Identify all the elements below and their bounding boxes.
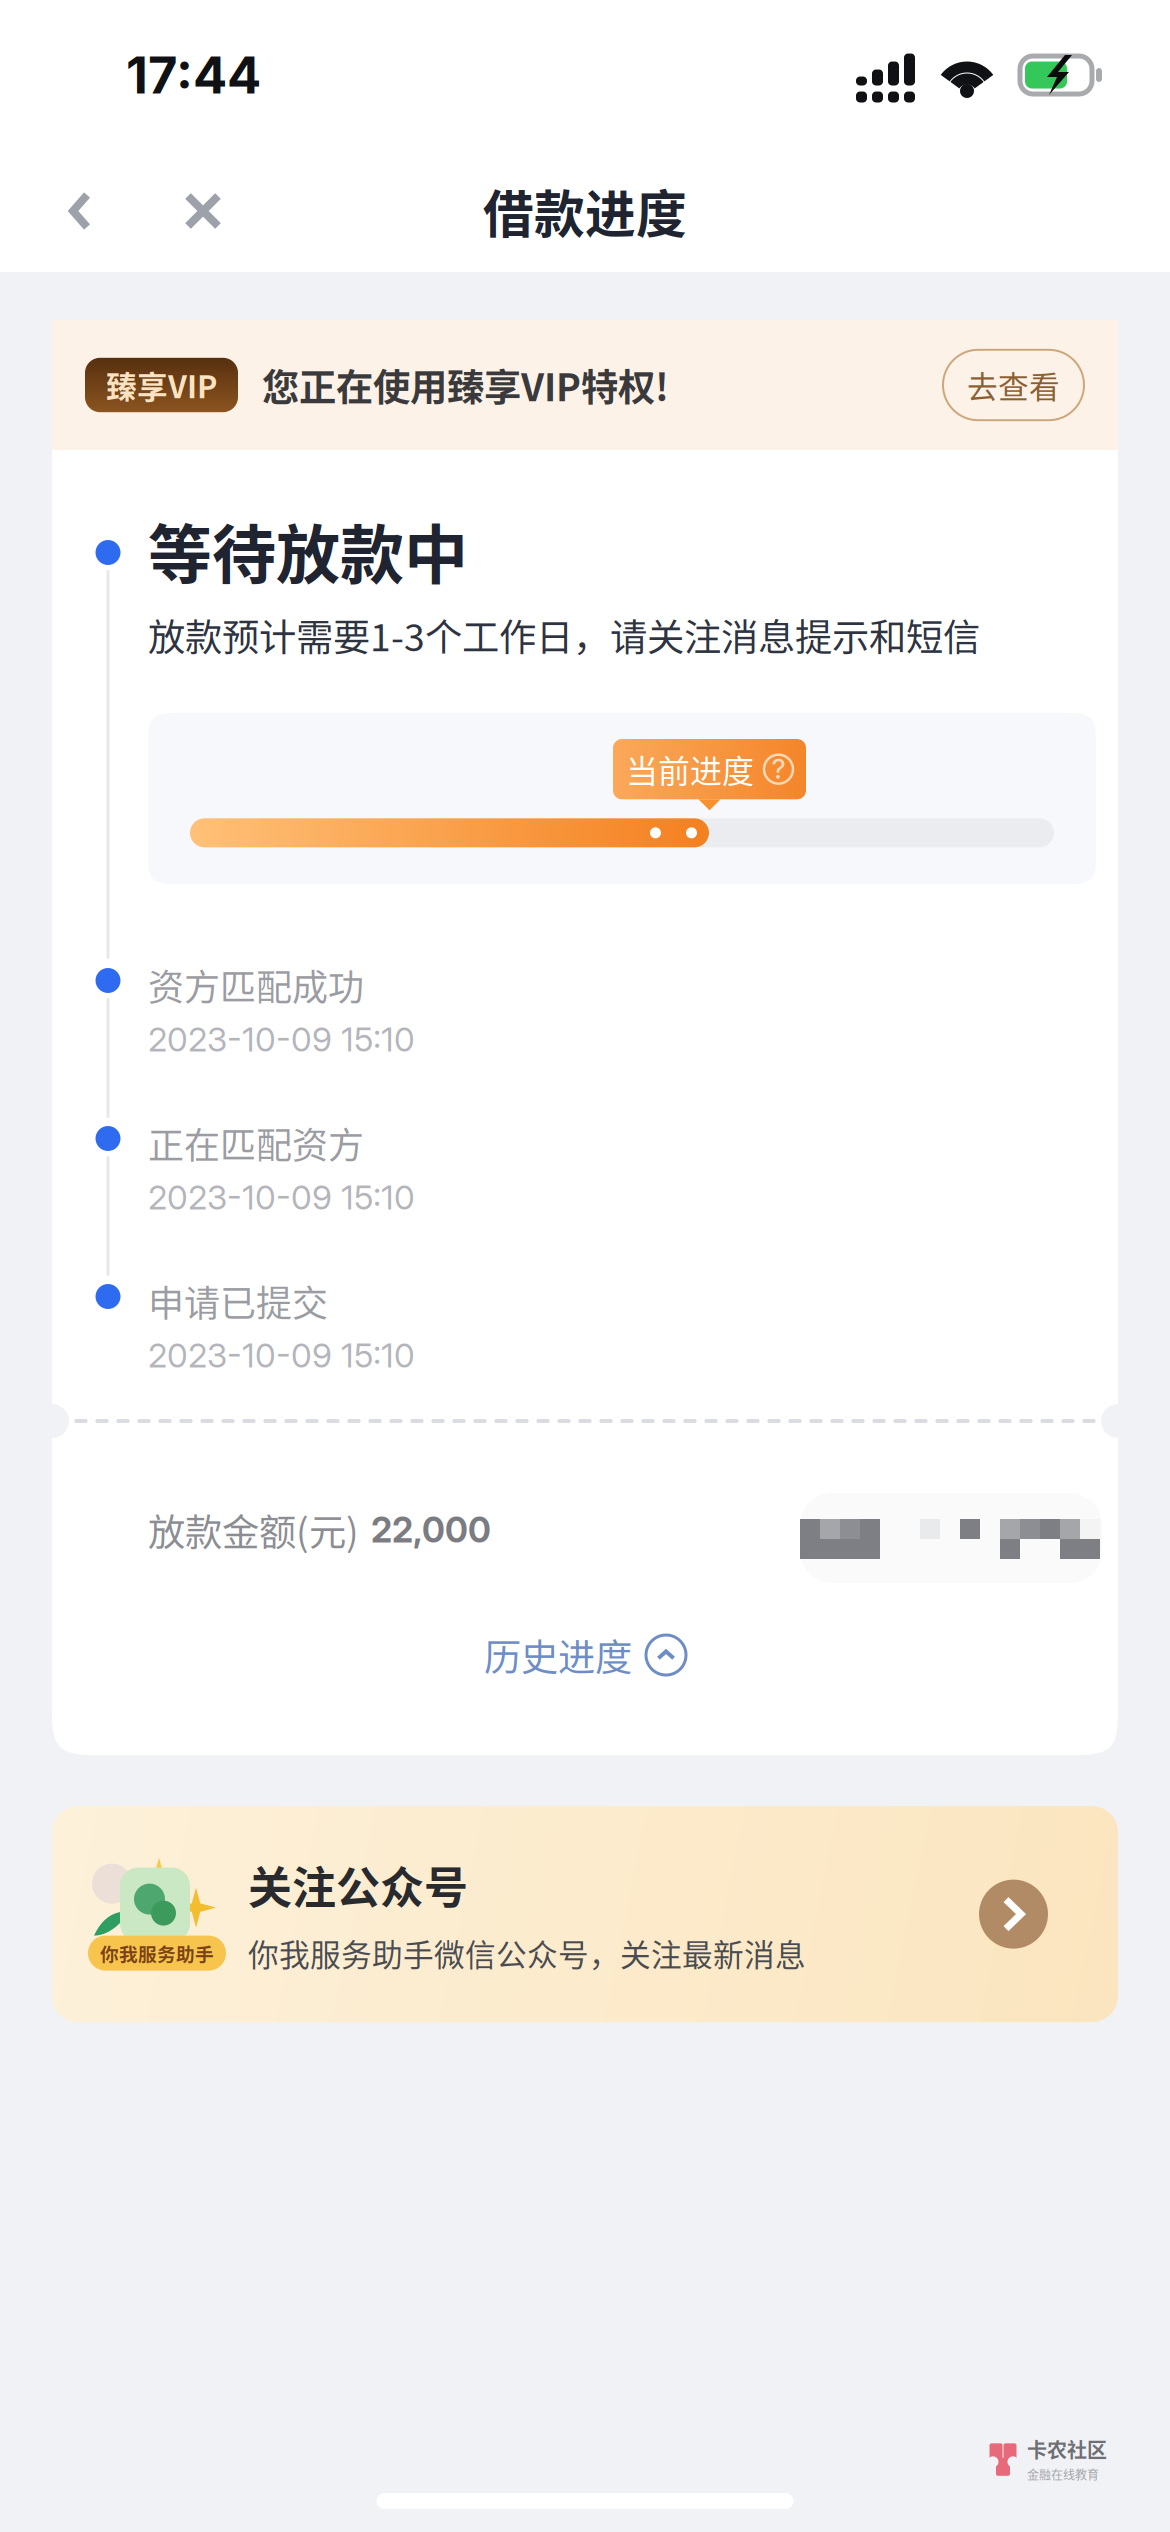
- staticText: 资方匹配成功: [148, 959, 364, 1011]
- button[interactable]: 历史进度: [52, 1602, 1118, 1708]
- staticText: 历史进度: [484, 1628, 632, 1682]
- staticText: 您正在使用臻享VIP特权!: [262, 358, 669, 412]
- button[interactable]: 臻享VIP: [52, 320, 1118, 450]
- staticText: 去查看: [967, 363, 1060, 407]
- staticText: 放款金额(元): [148, 1503, 359, 1557]
- staticText: 金融在线教育: [1027, 2466, 1099, 2483]
- staticText: 2023-10-09 15:10: [148, 1019, 415, 1059]
- button[interactable]: Back: [36, 159, 124, 263]
- staticText: 卡农社区: [1027, 2435, 1107, 2464]
- staticText: 申请已提交: [148, 1275, 328, 1327]
- staticText: 2023-10-09 15:10: [148, 1335, 415, 1375]
- staticText: 当前进度: [626, 746, 754, 792]
- staticText: 你我服务助手微信公众号，关注最新消息: [248, 1931, 806, 1975]
- staticText: 17:44: [126, 44, 261, 106]
- staticText: ?: [771, 753, 785, 785]
- staticText: 臻享VIP: [106, 363, 217, 407]
- staticText: 2023-10-09 15:10: [148, 1177, 415, 1217]
- button[interactable]: 你我服务助手: [52, 1806, 1118, 2022]
- staticText: 正在匹配资方: [148, 1117, 364, 1169]
- staticText: 22,000: [371, 1509, 491, 1551]
- staticText: 关注公众号: [248, 1853, 468, 1917]
- staticText: 等待放款中: [148, 504, 468, 596]
- staticText: 放款预计需要1-3个工作日，请关注消息提示和短信: [148, 608, 980, 662]
- staticText: 借款进度: [483, 174, 687, 248]
- button[interactable]: Close: [124, 159, 247, 263]
- staticText: 你我服务助手: [100, 1940, 214, 1967]
